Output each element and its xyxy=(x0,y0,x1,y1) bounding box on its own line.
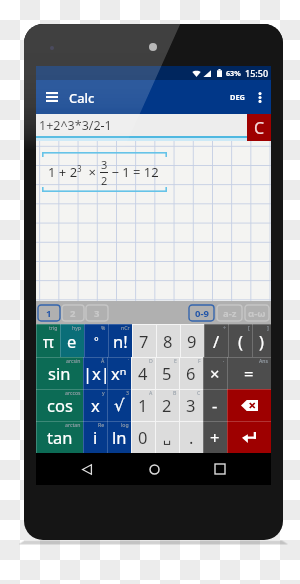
staticText: DEG xyxy=(230,92,245,102)
button[interactable]: C xyxy=(247,114,271,141)
button[interactable]: ) xyxy=(252,324,271,357)
button[interactable]: DEG xyxy=(226,80,249,114)
button[interactable]: . xyxy=(179,421,203,453)
staticText: i xyxy=(93,426,98,448)
button[interactable]: i xyxy=(83,421,107,453)
staticText: 1+2^3*3/2-1 xyxy=(39,117,112,134)
button[interactable]: 1 xyxy=(38,305,60,321)
button[interactable]: π xyxy=(36,324,60,357)
staticText: 8 xyxy=(163,330,173,352)
button[interactable]: Home xyxy=(139,454,169,484)
button[interactable]: x xyxy=(83,389,107,421)
button[interactable]: × xyxy=(203,357,227,389)
staticText: 0 xyxy=(138,426,148,448)
staticText: e xyxy=(67,330,77,352)
button[interactable]: α-ω xyxy=(245,305,269,321)
staticText: Re xyxy=(98,421,105,428)
staticText: ˙ xyxy=(128,357,129,364)
staticText: - xyxy=(212,394,218,416)
staticText: sin xyxy=(48,362,71,384)
button[interactable]: 2 xyxy=(62,305,84,321)
staticText: . xyxy=(189,426,194,448)
staticText: 1 xyxy=(46,307,52,320)
button[interactable]: 4 xyxy=(131,357,155,389)
staticText: 1 + 23 × xyxy=(48,163,100,181)
button[interactable]: Recent apps xyxy=(205,454,235,484)
button[interactable]: 3 xyxy=(179,389,203,421)
button[interactable]: - xyxy=(203,389,227,421)
staticText: 2 xyxy=(162,394,172,416)
staticText: a-z xyxy=(223,307,237,320)
staticText: ( xyxy=(238,330,243,352)
staticText: n! xyxy=(113,330,128,352)
staticText: / xyxy=(213,330,220,352)
staticText: ␣ xyxy=(163,430,172,445)
staticText: tan xyxy=(47,426,73,448)
button[interactable]: 1 xyxy=(131,389,155,421)
staticText: A xyxy=(149,389,153,396)
button[interactable]: xⁿ xyxy=(107,357,131,389)
button[interactable]: n! xyxy=(108,324,132,357)
staticText: 2 xyxy=(70,307,76,320)
button[interactable]: |x| xyxy=(83,357,107,389)
button[interactable]: 0-9 xyxy=(189,305,214,321)
button[interactable]: ° xyxy=(84,324,108,357)
staticText: α-ω xyxy=(248,307,266,320)
staticText: C xyxy=(254,117,265,139)
staticText: 2 xyxy=(101,173,108,188)
staticText: 6 xyxy=(186,362,196,384)
staticText: × xyxy=(210,362,220,384)
button[interactable]: 8 xyxy=(156,324,180,357)
staticText: arcsin xyxy=(66,357,81,364)
button[interactable]: 3 xyxy=(86,305,108,321)
button[interactable]: cos xyxy=(36,389,83,421)
button[interactable]: √ xyxy=(107,389,131,421)
button[interactable]: Back xyxy=(72,454,102,484)
staticText: · xyxy=(223,357,225,364)
staticText: ÷ xyxy=(223,324,226,331)
staticText: Calc xyxy=(69,89,95,106)
staticText: 3 xyxy=(101,157,108,172)
staticText: + xyxy=(210,426,220,448)
staticText: 3 xyxy=(94,307,100,320)
button[interactable]: a-z xyxy=(217,305,242,321)
button[interactable]: = xyxy=(227,357,271,389)
staticText: cos xyxy=(47,394,73,416)
staticText: 3 xyxy=(126,389,129,396)
staticText: E xyxy=(174,357,177,364)
staticText: C xyxy=(197,389,201,396)
staticText: nCr xyxy=(121,324,130,331)
button[interactable]: / xyxy=(204,324,228,357)
button[interactable]: 0 xyxy=(131,421,155,453)
staticText: 15:50 xyxy=(245,67,269,79)
staticText: y xyxy=(102,389,105,396)
staticText: xⁿ xyxy=(111,362,127,384)
button[interactable]: 6 xyxy=(179,357,203,389)
staticText: x xyxy=(91,394,100,416)
staticText: 7 xyxy=(139,330,149,352)
staticText: trig xyxy=(49,324,58,331)
staticText: log xyxy=(121,421,129,428)
button[interactable]: + xyxy=(203,421,227,453)
button[interactable]: sin xyxy=(36,357,83,389)
button[interactable]: ␣ xyxy=(155,421,179,453)
staticText: 5 xyxy=(162,362,172,384)
button[interactable]: 5 xyxy=(155,357,179,389)
button[interactable]: 7 xyxy=(132,324,156,357)
button[interactable] xyxy=(227,421,271,453)
staticText: Ans xyxy=(259,357,269,364)
button[interactable]: Navigation menu xyxy=(36,80,68,114)
staticText: arctan xyxy=(65,421,81,428)
button[interactable]: More options xyxy=(249,80,271,114)
staticText: √ xyxy=(114,396,125,415)
button[interactable]: 2 xyxy=(155,389,179,421)
button[interactable]: e xyxy=(60,324,84,357)
staticText: |x| xyxy=(83,362,107,384)
button[interactable]: ln xyxy=(107,421,131,453)
staticText: ) xyxy=(259,330,264,352)
button[interactable] xyxy=(227,389,271,421)
button[interactable]: ( xyxy=(228,324,252,357)
button[interactable]: 9 xyxy=(180,324,204,357)
staticText: 9 xyxy=(187,330,197,352)
button[interactable]: tan xyxy=(36,421,83,453)
